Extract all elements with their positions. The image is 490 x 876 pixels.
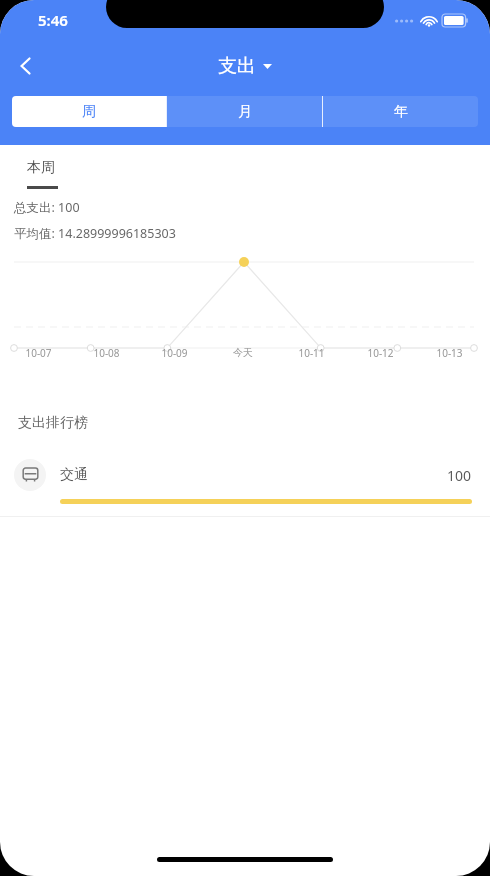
staticText: 10-08 xyxy=(93,346,120,360)
staticText: 10-09 xyxy=(161,346,188,360)
staticText: 支出 xyxy=(218,54,256,78)
button[interactable]: 年 xyxy=(323,96,478,127)
staticText: 10-11 xyxy=(298,346,325,360)
staticText: 支出排行榜 xyxy=(18,414,88,432)
button[interactable]: 周 xyxy=(12,96,166,127)
button[interactable]: 月 xyxy=(167,96,322,127)
staticText: 总支出: 100 xyxy=(14,199,80,216)
staticText: 平均值: 14.28999996185303 xyxy=(14,225,176,242)
staticText: 月 xyxy=(238,103,252,121)
staticText: 100 xyxy=(447,466,472,485)
staticText: 10-12 xyxy=(367,346,394,360)
button[interactable]: 支出 xyxy=(218,54,272,78)
button[interactable]: 交通 xyxy=(0,459,490,516)
staticText: 周 xyxy=(82,103,96,121)
staticText: 本周 xyxy=(27,159,55,177)
button[interactable]: Back xyxy=(0,40,52,92)
staticText: 今天 xyxy=(233,346,253,359)
staticText: 交通 xyxy=(60,466,88,484)
button[interactable]: 本周 xyxy=(27,159,58,189)
staticText: 5:46 xyxy=(38,10,68,30)
staticText: 年 xyxy=(394,103,408,121)
staticText: 10-13 xyxy=(436,346,463,360)
staticText: 10-07 xyxy=(25,346,52,360)
